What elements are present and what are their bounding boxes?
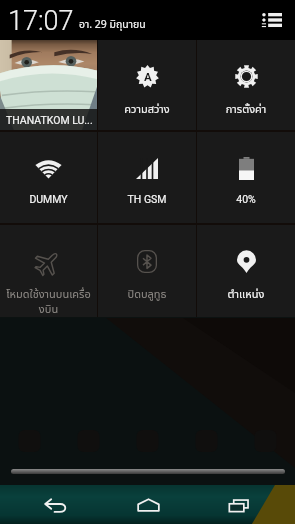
- button[interactable]: 40%: [197, 132, 295, 223]
- staticText: ตำแหน่ง: [199, 286, 293, 301]
- staticText: การตั้งค่า: [199, 101, 293, 116]
- staticText: DUMMY: [2, 193, 95, 205]
- button[interactable]: Back: [21, 486, 91, 524]
- button[interactable]: Home: [113, 486, 183, 524]
- staticText: อา. 29 มิถุนายน: [79, 17, 146, 31]
- button[interactable]: ตำแหน่ง: [197, 225, 295, 317]
- staticText: ปิดบลูทูธ: [100, 286, 194, 301]
- staticText: TH GSM: [100, 193, 194, 205]
- staticText: THANATKOM LU...: [6, 114, 93, 126]
- button[interactable]: TH GSM: [98, 132, 196, 223]
- button[interactable]: โหมดใช้งานบนเครื่อ งบิน: [0, 225, 97, 317]
- button[interactable]: Recents: [204, 486, 274, 524]
- staticText: ความสว่าง: [100, 101, 194, 116]
- staticText: 40%: [199, 193, 293, 205]
- button[interactable]: A: [98, 40, 196, 130]
- button[interactable]: การตั้งค่า: [197, 40, 295, 130]
- button[interactable]: Quick settings list: [256, 5, 286, 35]
- button[interactable]: ปิดบลูทูธ: [98, 225, 196, 317]
- button[interactable]: THANATKOM LU...: [0, 40, 97, 130]
- staticText: โหมดใช้งานบนเครื่อ งบิน: [2, 286, 95, 316]
- button[interactable]: DUMMY: [0, 132, 97, 223]
- staticText: A: [144, 70, 152, 83]
- staticText: 17:07: [8, 5, 74, 37]
